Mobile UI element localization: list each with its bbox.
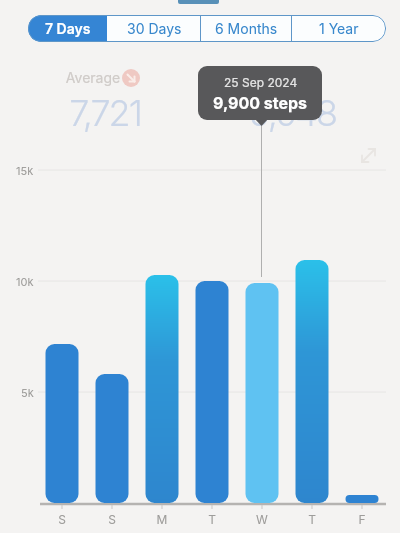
staticText: S [87,512,137,527]
button[interactable]: 25 Sep 2024 [198,66,322,120]
button[interactable]: 30 Days [108,15,200,42]
staticText: 25 Sep 2024 [224,75,298,90]
staticText: F [337,512,387,527]
staticText: 5k [21,386,34,399]
staticText: 15k [16,164,34,177]
button[interactable]: 1 Year [292,15,386,42]
staticText: Average [43,69,143,86]
staticText: T [187,512,237,527]
staticText: 7,721 [55,91,155,135]
staticText: T [287,512,337,527]
staticText: 7 Days [45,20,91,37]
staticText: 9,948 [236,91,336,135]
button[interactable]: 7 Days [28,15,107,42]
staticText: 30 Days [127,20,182,37]
staticText: S [37,512,87,527]
staticText: 10k [16,275,34,288]
staticText: 9,900 steps [213,93,308,112]
staticText: M [137,512,187,527]
staticText: W [237,512,287,527]
button[interactable]: 6 Months [201,15,291,42]
staticText: 6 Months [215,20,278,37]
staticText: 1 Year [319,20,359,37]
